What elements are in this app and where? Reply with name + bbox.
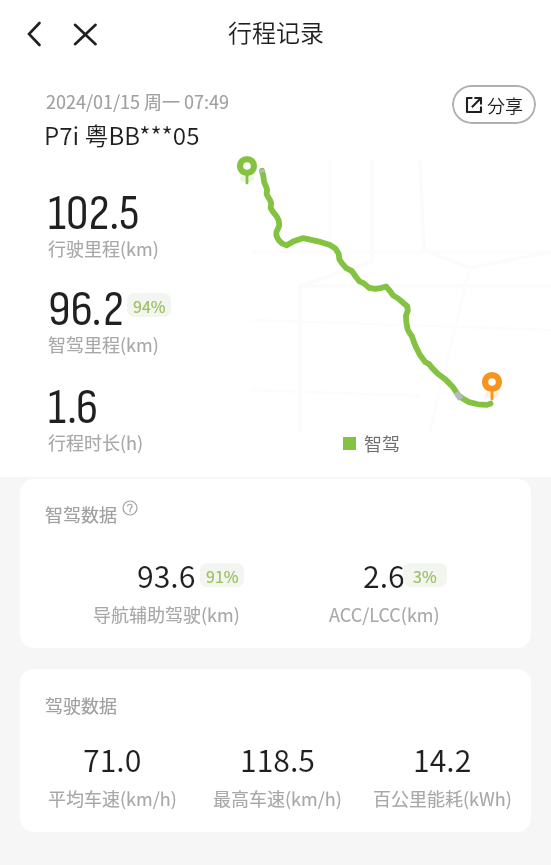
staticText: 行驶里程(km) <box>48 235 159 261</box>
button[interactable]: Back <box>15 14 55 54</box>
staticText: 91% <box>206 564 239 587</box>
staticText: 2.6 <box>363 553 405 596</box>
staticText: 94% <box>133 294 166 317</box>
staticText: 3% <box>413 564 437 587</box>
staticText: 智驾里程(km) <box>48 331 159 357</box>
staticText: 驾驶数据 <box>45 692 117 718</box>
staticText: 118.5 <box>240 737 315 780</box>
staticText: 平均车速(km/h) <box>48 785 177 811</box>
staticText: 102.5 <box>48 183 140 244</box>
staticText: 71.0 <box>83 737 142 780</box>
staticText: 百公里能耗(kWh) <box>373 785 512 811</box>
staticText: 2024/01/15 周一 07:49 <box>46 88 230 114</box>
staticText: ACC/LCC(km) <box>329 601 440 627</box>
staticText: 14.2 <box>413 737 472 780</box>
staticText: 93.6 <box>137 553 196 596</box>
staticText: 最高车速(km/h) <box>213 785 342 811</box>
staticText: 96.2 <box>48 279 125 340</box>
staticText: 智驾 <box>364 430 400 456</box>
button[interactable]: Close <box>65 14 105 54</box>
staticText: 行程记录 <box>228 14 324 49</box>
staticText: 1.6 <box>48 377 99 438</box>
staticText: 行程时长(h) <box>48 429 144 455</box>
staticText: 分享 <box>487 92 523 118</box>
button[interactable]: About smart driving data <box>118 496 142 520</box>
staticText: 导航辅助驾驶(km) <box>93 601 240 627</box>
staticText: P7i 粤BB***05 <box>44 117 200 152</box>
staticText: 智驾数据 <box>45 501 117 527</box>
button[interactable]: 分享 <box>452 85 536 124</box>
